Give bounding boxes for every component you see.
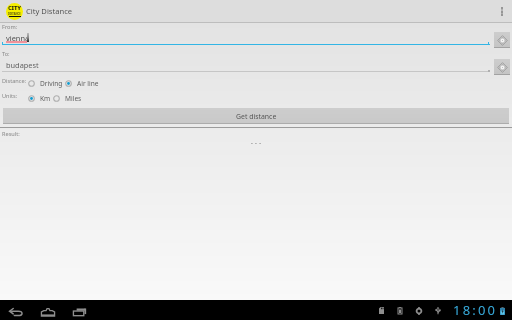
staticText: Distance: <box>2 77 27 85</box>
staticText: vienna <box>6 33 30 43</box>
button[interactable]: Home <box>37 300 59 320</box>
button[interactable]: Back <box>5 300 27 320</box>
staticText: 18:00 <box>453 301 498 319</box>
staticText: Air line <box>77 79 99 88</box>
button[interactable]: Miles <box>53 92 82 105</box>
staticText: City Distance <box>26 6 73 16</box>
button[interactable]: Use my location <box>494 59 510 75</box>
staticText: Get distance <box>236 112 277 121</box>
staticText: DISTANCE <box>8 12 21 16</box>
staticText: To: <box>2 50 10 58</box>
button[interactable]: Driving <box>28 77 63 90</box>
staticText: budapest <box>6 60 39 70</box>
staticText: From: <box>2 23 18 31</box>
staticText: Units: <box>2 92 18 100</box>
button[interactable]: Use my location <box>494 32 510 48</box>
staticText: Driving <box>40 79 63 88</box>
button[interactable]: Km <box>28 92 51 105</box>
staticText: Miles <box>65 94 82 103</box>
staticText: Result: <box>2 130 20 138</box>
button[interactable]: Recent apps <box>69 300 91 320</box>
staticText: Km <box>40 94 51 103</box>
staticText: CITY <box>8 4 21 12</box>
button[interactable]: More options <box>492 0 512 22</box>
button[interactable]: Air line <box>65 77 99 90</box>
button[interactable]: Get distance <box>3 108 509 124</box>
